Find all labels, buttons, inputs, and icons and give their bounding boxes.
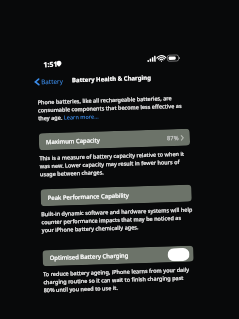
staticText: Maximum Capacity [46,136,100,146]
button[interactable]: Peak Performance Capability [40,185,192,206]
button[interactable]: Optimised Battery Charging [42,246,194,266]
staticText: 1:51 [43,60,58,70]
other: Wi-Fi [157,55,165,62]
staticText: 87% [167,134,179,142]
staticText: Optimised Battery Charging [49,252,129,262]
button[interactable]: Optimised Battery Charging [167,248,190,261]
staticText: Phone batteries, like all rechargeable b… [38,94,190,122]
staticText: This is a measure of battery capacity re… [39,150,192,178]
staticText: Battery [41,77,63,86]
button[interactable]: Back to Battery [34,75,63,87]
staticText: Battery Health & Charging [72,74,151,84]
staticText: To reduce battery ageing, iPhone learns … [43,265,196,294]
other: Cellular signal [147,56,156,62]
button[interactable]: Maximum Capacity [39,129,190,150]
staticText: Built-in dynamic software and hardware s… [41,206,194,234]
staticText: Peak Performance Capability [48,191,130,202]
other: Battery level [167,55,180,61]
